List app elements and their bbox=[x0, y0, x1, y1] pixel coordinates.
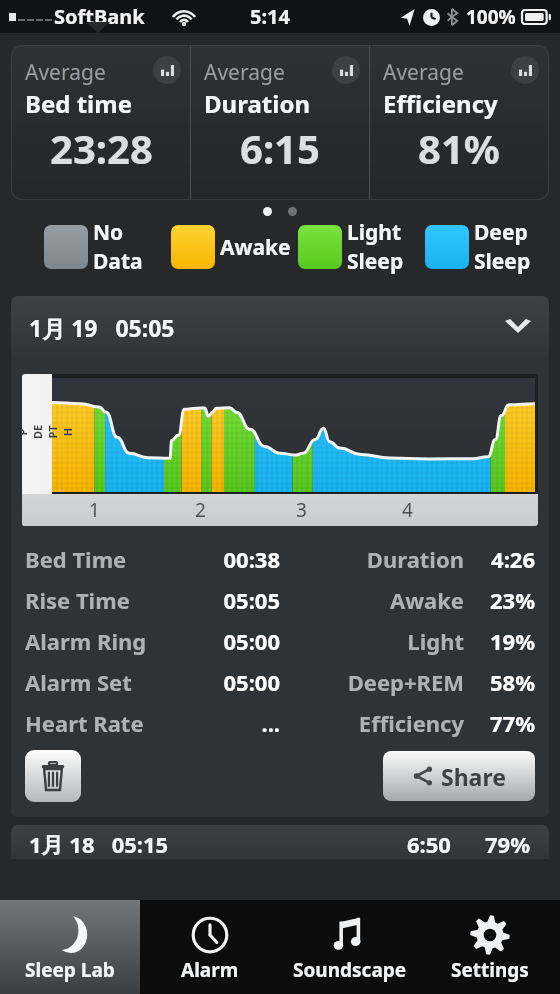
staticText: 77% bbox=[464, 708, 535, 738]
button[interactable]: Alarm Set bbox=[25, 661, 535, 702]
staticText: Rise Time bbox=[25, 585, 173, 615]
button[interactable]: 1月 18 05:15 bbox=[11, 825, 549, 859]
staticText: 00:38 bbox=[173, 544, 280, 574]
button[interactable]: Alarm bbox=[140, 900, 280, 994]
staticText: Light bbox=[347, 218, 402, 247]
staticText: Alarm Set bbox=[25, 667, 173, 697]
staticText: 05:00 bbox=[173, 667, 280, 697]
button[interactable]: Rise Time bbox=[25, 579, 535, 620]
staticText: Sleep bbox=[347, 247, 404, 276]
button[interactable]: Average bbox=[12, 46, 190, 199]
button[interactable]: Show graph bbox=[153, 56, 181, 84]
button[interactable]: Light bbox=[298, 218, 425, 276]
button[interactable]: Show graph bbox=[332, 56, 360, 84]
staticText: No bbox=[93, 218, 124, 247]
staticText: 2 bbox=[195, 497, 206, 523]
staticText: Deep+REM bbox=[306, 667, 464, 697]
staticText: Sleep Lab bbox=[25, 957, 115, 983]
staticText: Bed Time bbox=[25, 544, 173, 574]
staticText: Awake bbox=[306, 585, 464, 615]
staticText: Awake bbox=[220, 233, 291, 262]
staticText: Data bbox=[93, 247, 143, 276]
staticText: Light bbox=[306, 626, 464, 656]
button[interactable]: Show graph bbox=[511, 56, 539, 84]
button[interactable]: Bed Time bbox=[25, 538, 535, 579]
button[interactable]: Sleep Lab bbox=[0, 900, 140, 994]
button[interactable]: Heart Rate bbox=[25, 702, 535, 743]
staticText: Bed time bbox=[25, 87, 133, 120]
staticText: 4 bbox=[402, 497, 413, 523]
button[interactable]: Alarm Ring bbox=[25, 620, 535, 661]
button[interactable]: No bbox=[44, 218, 171, 276]
staticText: 79% bbox=[485, 829, 531, 859]
button[interactable]: Deep bbox=[425, 218, 552, 276]
staticText: SLEEP DEPTH bbox=[22, 424, 75, 440]
staticText: 1月 18 05:15 bbox=[29, 829, 169, 859]
staticText: SoftBank bbox=[54, 3, 145, 30]
staticText: 4:26 bbox=[464, 544, 535, 574]
button[interactable]: Delete bbox=[25, 750, 81, 802]
staticText: 23% bbox=[464, 585, 535, 615]
button[interactable]: Share bbox=[383, 751, 535, 801]
staticText: Sleep bbox=[474, 247, 531, 276]
staticText: Settings bbox=[451, 957, 529, 983]
staticText: Deep bbox=[474, 218, 528, 247]
staticText: 81% bbox=[418, 121, 500, 175]
button[interactable]: SLEEP DEPTH bbox=[22, 374, 538, 526]
staticText: 6:50 bbox=[407, 829, 451, 859]
staticText: Average bbox=[383, 58, 464, 87]
button[interactable]: Settings bbox=[420, 900, 560, 994]
staticText: Duration bbox=[306, 544, 464, 574]
staticText: Efficiency bbox=[306, 708, 464, 738]
button[interactable]: Awake bbox=[171, 218, 298, 276]
staticText: 23:28 bbox=[50, 121, 153, 175]
staticText: 6:15 bbox=[240, 121, 320, 175]
staticText: Heart Rate bbox=[25, 708, 173, 738]
staticText: ... bbox=[173, 708, 280, 738]
staticText: 1月 19 05:05 bbox=[29, 312, 175, 343]
button[interactable]: Average bbox=[370, 46, 548, 199]
staticText: 05:05 bbox=[173, 585, 280, 615]
staticText: Soundscape bbox=[293, 957, 407, 983]
staticText: 19% bbox=[464, 626, 535, 656]
staticText: 3 bbox=[296, 497, 307, 523]
staticText: Duration bbox=[204, 87, 310, 120]
staticText: 100% bbox=[466, 4, 516, 30]
staticText: 5:14 bbox=[250, 3, 290, 30]
staticText: Average bbox=[204, 58, 285, 87]
staticText: Alarm bbox=[181, 957, 239, 983]
staticText: 58% bbox=[464, 667, 535, 697]
button[interactable]: Soundscape bbox=[280, 900, 420, 994]
staticText: Efficiency bbox=[383, 87, 498, 120]
button[interactable]: Average bbox=[191, 46, 369, 199]
staticText: Share bbox=[441, 761, 506, 792]
staticText: Average bbox=[25, 58, 106, 87]
staticText: Alarm Ring bbox=[25, 626, 173, 656]
staticText: 05:00 bbox=[173, 626, 280, 656]
button[interactable]: 1月 19 05:05 bbox=[11, 296, 549, 358]
staticText: 1 bbox=[89, 497, 100, 523]
